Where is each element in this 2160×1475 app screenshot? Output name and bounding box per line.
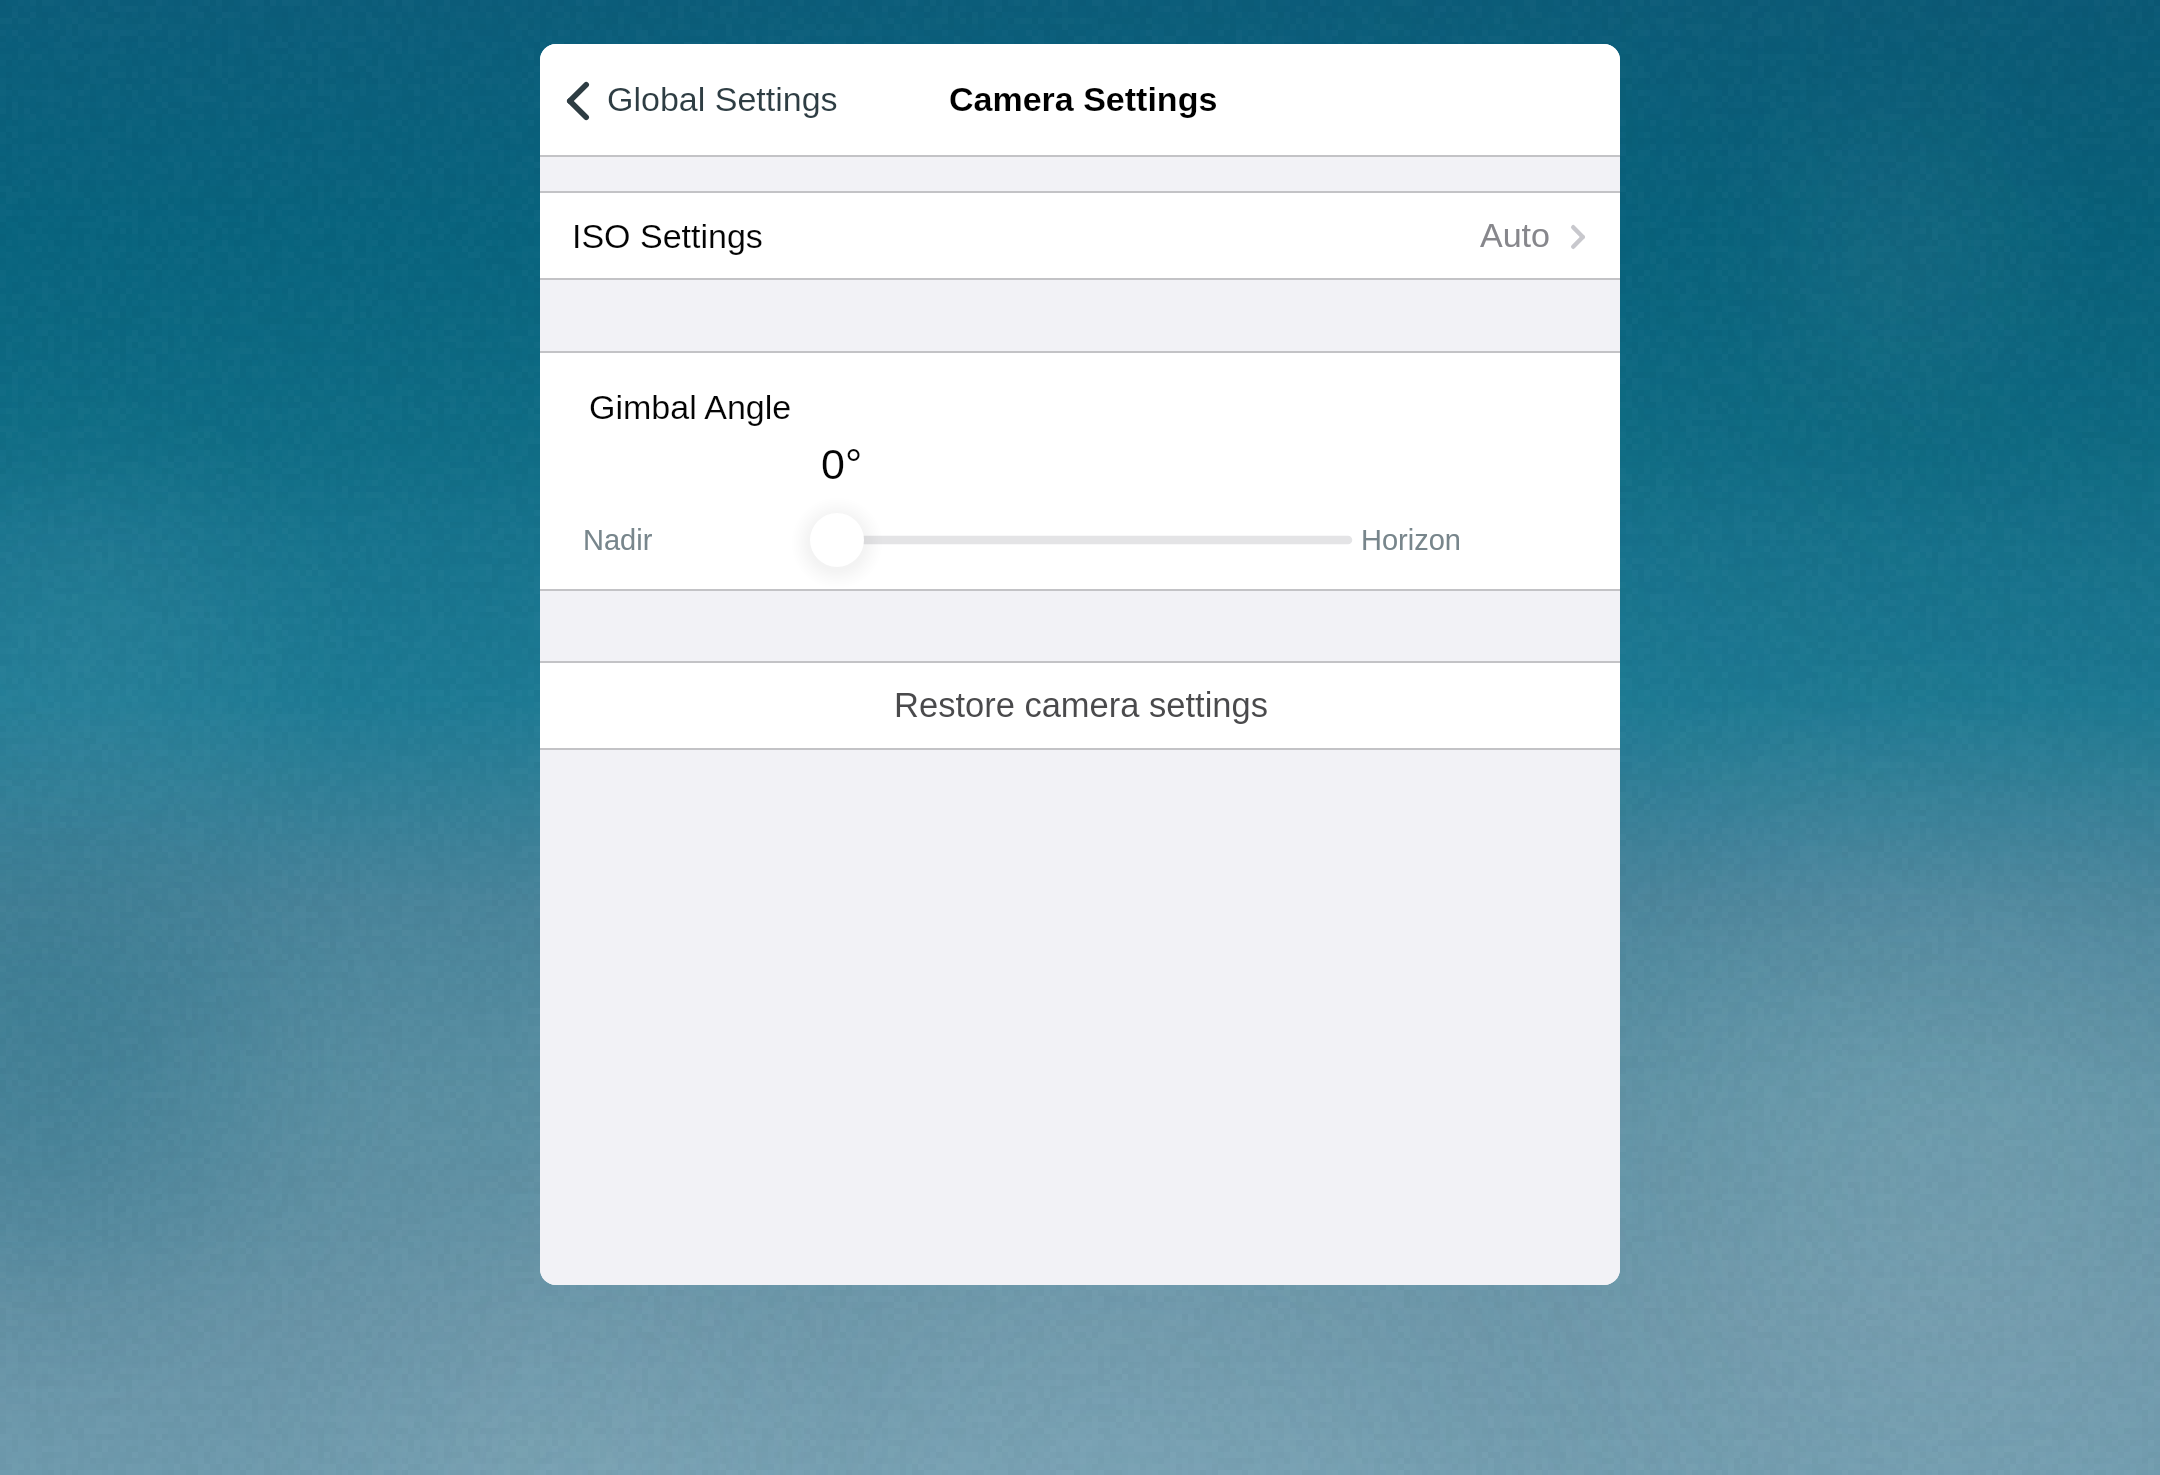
staticText: Restore camera settings bbox=[894, 686, 1268, 725]
staticText: ISO Settings bbox=[572, 217, 763, 255]
staticText: Gimbal Angle bbox=[589, 388, 792, 426]
button[interactable]: ISO Settings bbox=[540, 193, 1620, 278]
button[interactable]: Back to Global Settings bbox=[557, 65, 867, 135]
staticText: 0° bbox=[821, 440, 863, 488]
button[interactable]: Restore camera settings bbox=[540, 663, 1620, 748]
staticText: Nadir bbox=[583, 524, 653, 556]
button[interactable]: Gimbal angle slider, 0 degrees bbox=[770, 483, 1410, 598]
staticText: Camera Settings bbox=[949, 80, 1218, 118]
staticText: Global Settings bbox=[607, 80, 838, 118]
staticText: Auto bbox=[1480, 216, 1550, 254]
staticText: Horizon bbox=[1361, 524, 1461, 556]
